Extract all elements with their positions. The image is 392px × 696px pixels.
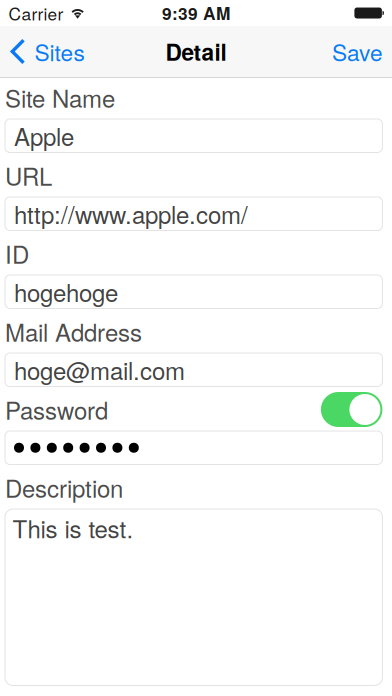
button[interactable]: hoge@mail.com [5,353,382,386]
staticText: Description [5,470,123,505]
button[interactable]: Save [320,26,392,77]
staticText: Site Name [5,80,115,115]
button[interactable]: http://www.apple.com/ [5,197,382,230]
staticText: Carrier [8,1,63,25]
button[interactable]: Apple [5,119,382,152]
button[interactable]: Sites [0,26,92,77]
staticText: Apple [14,119,74,153]
staticText: Password [5,392,108,427]
staticText: Save [332,35,383,68]
staticText: Detail [165,35,226,68]
staticText: hoge@mail.com [14,353,185,387]
staticText: hogehoge [14,275,118,309]
staticText: URL [5,158,52,193]
button[interactable]: Reveal password [321,392,382,427]
staticText: http://www.apple.com/ [14,197,248,231]
staticText: ID [5,236,29,271]
staticText: 9:39 AM [162,1,230,25]
button[interactable]: This is test. [5,509,382,685]
staticText: This is test. [12,511,133,545]
button[interactable]: hogehoge [5,275,382,308]
staticText: Sites [34,35,84,68]
button[interactable]: Password [5,431,382,464]
staticText: Mail Address [5,314,142,349]
